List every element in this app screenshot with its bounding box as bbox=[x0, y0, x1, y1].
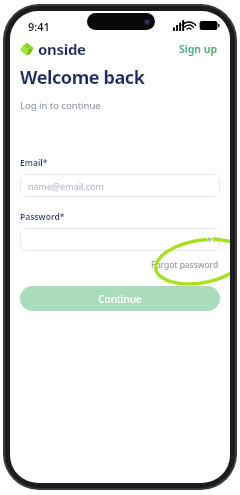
staticText: Continue bbox=[98, 292, 142, 306]
button[interactable]: Sign up bbox=[177, 39, 220, 59]
button[interactable] bbox=[20, 228, 220, 251]
staticText: 9:41 bbox=[28, 19, 50, 34]
button[interactable]: onside home bbox=[20, 39, 86, 59]
staticText: Log in to continue bbox=[20, 99, 101, 112]
staticText: Forgot password bbox=[151, 259, 219, 271]
staticText: Email* bbox=[20, 157, 48, 169]
staticText: name@email.com bbox=[28, 180, 104, 192]
button[interactable]: name@email.com bbox=[20, 174, 220, 197]
staticText: Sign up bbox=[179, 42, 218, 56]
staticText: onside bbox=[38, 39, 86, 59]
button[interactable]: Forgot password bbox=[150, 257, 220, 273]
staticText: Welcome back bbox=[20, 65, 145, 90]
staticText: Password* bbox=[20, 211, 65, 223]
button[interactable]: Continue bbox=[20, 286, 220, 311]
